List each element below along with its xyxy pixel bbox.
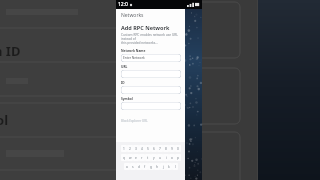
staticText: ID bbox=[121, 81, 125, 85]
staticText: r bbox=[141, 156, 143, 160]
button[interactable]: f bbox=[142, 163, 148, 170]
staticText: y bbox=[153, 156, 155, 160]
staticText: k bbox=[168, 165, 170, 169]
button[interactable]: Networks bbox=[116, 9, 185, 21]
staticText: Enter Network bbox=[123, 56, 145, 60]
button[interactable]: g bbox=[148, 163, 154, 170]
staticText: e bbox=[135, 156, 137, 160]
button[interactable]: p bbox=[175, 154, 181, 161]
button[interactable]: q bbox=[121, 154, 127, 161]
button[interactable]: d bbox=[136, 163, 142, 170]
staticText: l bbox=[175, 165, 176, 169]
staticText: Block Explorer URL bbox=[121, 119, 148, 123]
button[interactable]: o bbox=[169, 154, 175, 161]
button[interactable]: 4 bbox=[139, 145, 145, 152]
staticText: j bbox=[163, 165, 164, 169]
staticText: g bbox=[150, 165, 152, 169]
staticText: f bbox=[144, 165, 146, 169]
button[interactable]: s bbox=[130, 163, 136, 170]
staticText: 9 bbox=[171, 147, 173, 151]
button[interactable]: i bbox=[163, 154, 169, 161]
button[interactable]: 8 bbox=[163, 145, 169, 152]
staticText: 4 bbox=[141, 147, 143, 151]
button[interactable] bbox=[121, 70, 181, 78]
staticText: Network Name bbox=[121, 49, 146, 53]
button[interactable]: 9 bbox=[169, 145, 175, 152]
button[interactable]: 1 bbox=[121, 145, 127, 152]
staticText: Add RPC Network bbox=[121, 24, 170, 31]
button[interactable]: 6 bbox=[151, 145, 157, 152]
button[interactable]: a bbox=[124, 163, 130, 170]
staticText: Symbol bbox=[121, 97, 133, 101]
staticText: p bbox=[177, 156, 179, 160]
staticText: ol bbox=[0, 111, 8, 129]
staticText: URL bbox=[121, 65, 128, 69]
staticText: 2 bbox=[129, 147, 131, 151]
button[interactable]: Enter Network bbox=[121, 54, 181, 62]
staticText: 6 bbox=[153, 147, 155, 151]
button[interactable] bbox=[121, 102, 181, 110]
button[interactable]: 3 bbox=[133, 145, 139, 152]
staticText: 5 bbox=[147, 147, 149, 151]
staticText: d bbox=[138, 165, 140, 169]
staticText: a bbox=[126, 165, 128, 169]
staticText: 12:0 bbox=[118, 1, 128, 8]
button[interactable]: 5 bbox=[145, 145, 151, 152]
button[interactable]: h bbox=[154, 163, 160, 170]
staticText: q bbox=[123, 156, 125, 160]
staticText: h bbox=[156, 165, 158, 169]
button[interactable]: y bbox=[151, 154, 157, 161]
button[interactable]: u bbox=[157, 154, 163, 161]
staticText: 7 bbox=[159, 147, 161, 151]
button[interactable]: 7 bbox=[157, 145, 163, 152]
staticText: 3 bbox=[135, 147, 137, 151]
button[interactable]: w bbox=[127, 154, 133, 161]
button[interactable]: l bbox=[172, 163, 178, 170]
button[interactable]: e bbox=[133, 154, 139, 161]
staticText: i bbox=[166, 156, 167, 160]
button[interactable]: j bbox=[160, 163, 166, 170]
button[interactable]: k bbox=[166, 163, 172, 170]
staticText: 8 bbox=[165, 147, 167, 151]
staticText: Networks bbox=[121, 12, 144, 19]
staticText: t bbox=[147, 156, 149, 160]
staticText: u bbox=[159, 156, 161, 160]
staticText: 0 bbox=[177, 147, 179, 151]
staticText: w bbox=[129, 156, 132, 160]
staticText: Custom RPC enables network use URL inste… bbox=[121, 33, 181, 45]
button[interactable]: t bbox=[145, 154, 151, 161]
staticText: 1 bbox=[123, 147, 125, 151]
button[interactable]: 0 bbox=[175, 145, 181, 152]
staticText: n ID bbox=[0, 42, 21, 60]
button[interactable]: r bbox=[139, 154, 145, 161]
staticText: s bbox=[132, 165, 134, 169]
button[interactable]: 2 bbox=[127, 145, 133, 152]
button[interactable] bbox=[121, 86, 181, 94]
staticText: o bbox=[171, 156, 173, 160]
